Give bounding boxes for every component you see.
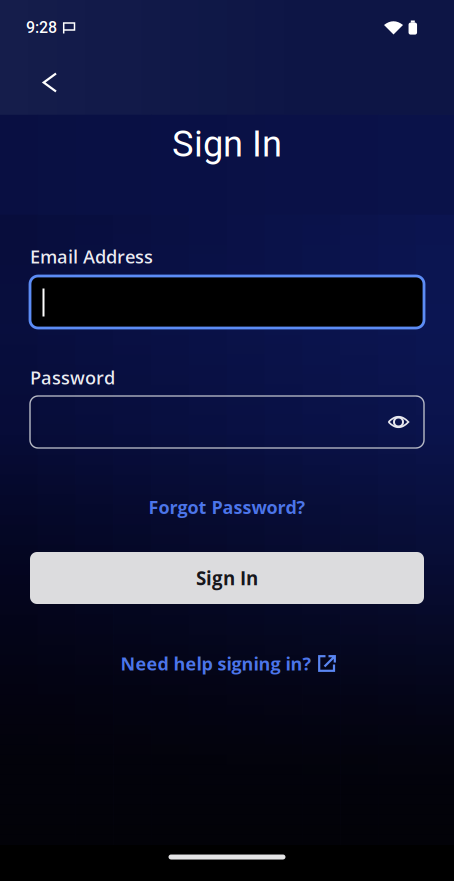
button[interactable] xyxy=(27,60,71,104)
staticText: 9:28 xyxy=(26,18,57,37)
staticText: Sign In xyxy=(172,123,282,165)
button[interactable]: Need help signing in? xyxy=(120,651,335,676)
button[interactable] xyxy=(30,276,424,328)
button[interactable]: Forgot Password? xyxy=(148,495,305,519)
button[interactable] xyxy=(30,396,424,448)
staticText: Need help signing in? xyxy=(120,651,311,676)
staticText: Email Address xyxy=(30,244,153,269)
button[interactable]: Sign In xyxy=(30,552,424,604)
staticText: Forgot Password? xyxy=(148,495,305,519)
staticText: Password xyxy=(30,365,115,390)
staticText: Sign In xyxy=(196,565,258,591)
